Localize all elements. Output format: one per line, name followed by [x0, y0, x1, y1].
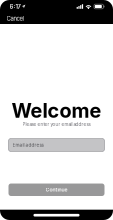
staticText: 6:17 [9, 3, 20, 10]
staticText: Please enter your email address [22, 122, 90, 127]
button[interactable]: Email address [8, 138, 104, 151]
button[interactable]: Continue [8, 183, 104, 196]
staticText: Continue [45, 187, 67, 193]
staticText: Welcome [11, 99, 101, 122]
staticText: Email address [12, 142, 43, 148]
staticText: Cancel [6, 15, 23, 22]
button[interactable]: Cancel [0, 13, 29, 24]
